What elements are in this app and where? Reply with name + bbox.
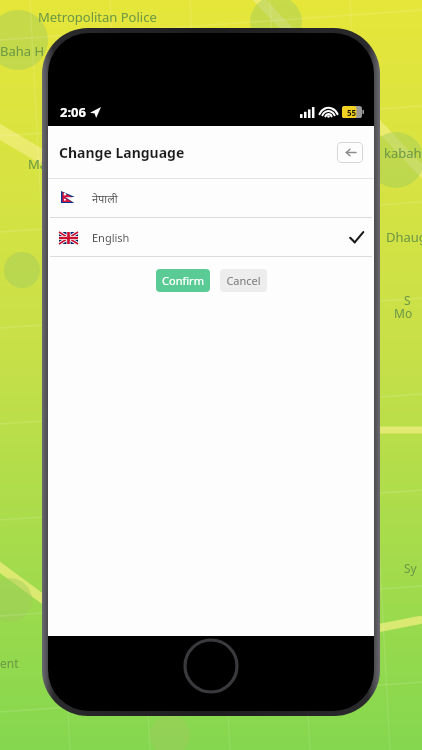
staticText: Sy	[404, 560, 417, 576]
staticText: Confirm	[162, 273, 204, 288]
staticText: 55	[347, 107, 357, 118]
staticText: Baha H	[0, 42, 45, 60]
staticText: ent	[0, 655, 19, 671]
staticText: English	[92, 230, 130, 245]
button[interactable]: नेपाली	[48, 179, 374, 217]
staticText: Change Language	[59, 143, 185, 162]
button[interactable]: Cancel	[220, 269, 267, 292]
staticText: kabahil	[384, 144, 422, 162]
staticText: 2:06	[60, 103, 86, 121]
staticText: Mo	[394, 305, 413, 321]
staticText: Dhaug	[386, 228, 422, 246]
staticText: Cancel	[226, 273, 261, 288]
button[interactable]: Back	[337, 142, 363, 163]
button[interactable]: Confirm	[156, 269, 210, 292]
staticText: Ma	[28, 155, 48, 173]
staticText: Metropolitan Police	[38, 8, 157, 26]
button[interactable]: English	[48, 218, 374, 256]
staticText: नेपाली	[92, 191, 118, 206]
staticText: S	[404, 292, 411, 308]
